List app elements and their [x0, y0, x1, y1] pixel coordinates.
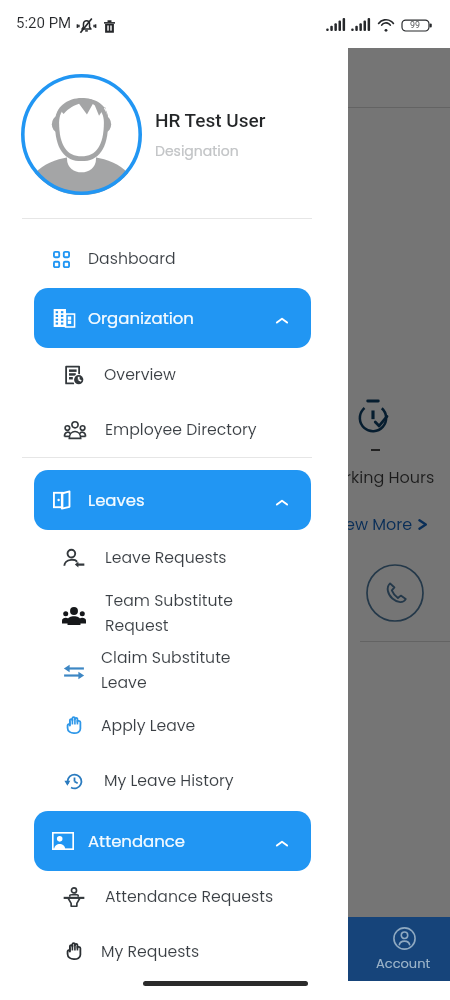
button[interactable]: Attendance Requests	[0, 874, 348, 920]
staticText: 99	[410, 20, 421, 31]
staticText: Team Substitute Request	[105, 590, 233, 636]
staticText: Account	[376, 954, 431, 972]
button[interactable]: Team Substitute Request	[0, 590, 348, 636]
button[interactable]: Apply Leave	[0, 703, 348, 749]
staticText: 5:20 PM	[16, 14, 72, 32]
staticText: My Requests	[101, 941, 200, 963]
staticText: HR Test User	[155, 109, 266, 131]
staticText: Leave Requests	[105, 547, 227, 569]
button[interactable]: Overview	[0, 352, 348, 398]
button[interactable]: Leaves	[34, 470, 311, 530]
staticText: My Leave History	[104, 770, 234, 792]
button[interactable]: Employee Directory	[0, 407, 348, 453]
staticText: Designation	[155, 141, 239, 161]
staticText: Apply Leave	[101, 715, 196, 737]
button[interactable]: Leave Requests	[0, 535, 348, 581]
button[interactable]: My Requests	[0, 929, 348, 975]
staticText: Organization	[88, 307, 194, 330]
staticText: rking Hours	[345, 466, 435, 488]
button[interactable]: Dashboard	[0, 236, 348, 282]
staticText: Overview	[104, 364, 176, 386]
staticText: ew More	[345, 513, 413, 535]
button[interactable]: Attendance	[34, 811, 311, 871]
staticText: Attendance Requests	[105, 886, 274, 908]
staticText: Employee Directory	[105, 419, 257, 441]
staticText: Dashboard	[88, 248, 176, 270]
staticText: Claim Substitute Leave	[101, 647, 231, 693]
button[interactable]: Organization	[34, 288, 311, 348]
button[interactable]: Claim Substitute Leave	[0, 647, 348, 693]
staticText: Attendance	[88, 830, 186, 853]
button[interactable]: My Leave History	[0, 758, 348, 804]
staticText: Leaves	[88, 489, 145, 512]
